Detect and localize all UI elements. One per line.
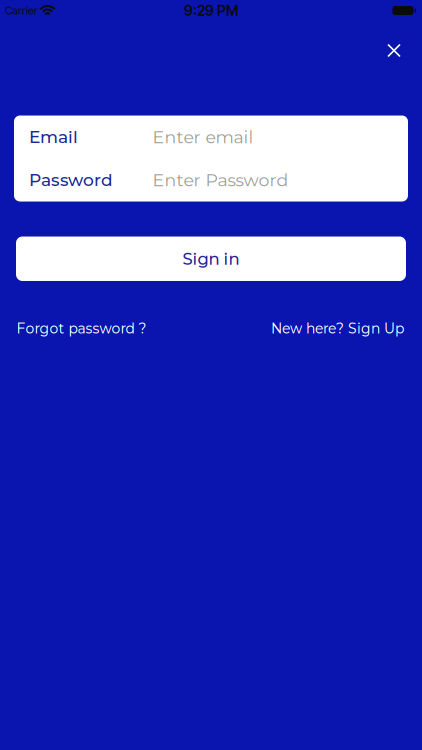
textField[interactable]: Enter Password [152,169,408,190]
staticText: Forgot password ? [16,320,146,337]
staticText: Carrier [5,4,38,17]
staticText: Password [29,170,113,190]
staticText: New here? Sign Up [271,320,404,337]
button[interactable]: New here? Sign Up [271,320,404,337]
button[interactable]: Sign in [16,236,406,281]
staticText: 9:29 PM [184,2,238,19]
staticText: Email [29,127,78,147]
textField[interactable]: Enter email [152,126,408,147]
staticText: Enter email [152,126,253,147]
button[interactable]: Forgot password ? [16,320,146,337]
button[interactable]: Close [379,36,408,65]
staticText: Sign in [182,249,239,269]
staticText: Enter Password [152,169,288,190]
